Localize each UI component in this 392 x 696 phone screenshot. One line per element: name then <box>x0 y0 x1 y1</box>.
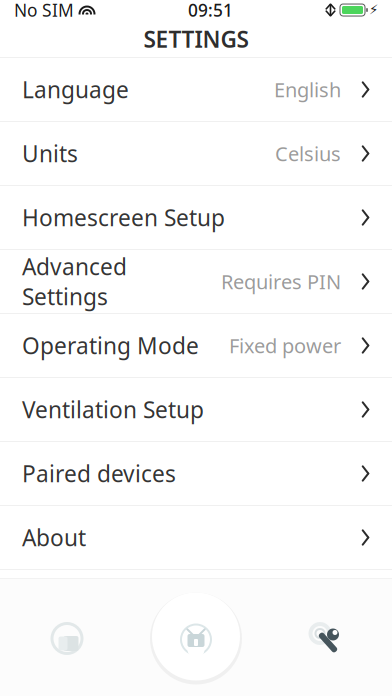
staticText: Ventilation Setup <box>22 394 204 424</box>
staticText: Fixed power <box>229 332 341 359</box>
staticText: Advanced Settings <box>22 251 127 312</box>
button[interactable]: Units <box>0 122 392 186</box>
staticText: About <box>22 522 86 552</box>
button[interactable]: Home <box>141 578 251 696</box>
button[interactable]: Paired devices <box>0 442 392 506</box>
staticText: 09:51 <box>188 0 233 21</box>
staticText: Language <box>22 74 129 104</box>
staticText: No SIM <box>14 0 74 21</box>
button[interactable]: About <box>0 506 392 570</box>
staticText: Units <box>22 138 78 168</box>
staticText: Paired devices <box>22 458 176 488</box>
button[interactable]: Climate <box>12 578 122 696</box>
button[interactable]: Advanced Settings <box>0 250 392 314</box>
staticText: Homescreen Setup <box>22 202 225 232</box>
staticText: Celsius <box>275 140 341 167</box>
button[interactable]: Language <box>0 58 392 122</box>
button[interactable]: Home <box>146 586 246 686</box>
staticText: English <box>274 76 341 103</box>
staticText: SETTINGS <box>143 24 248 54</box>
staticText: Requires PIN <box>221 268 341 295</box>
button[interactable]: Ventilation Setup <box>0 378 392 442</box>
button[interactable]: Operating Mode <box>0 314 392 378</box>
button[interactable]: Settings <box>270 578 380 696</box>
staticText: Operating Mode <box>22 330 199 360</box>
button[interactable]: Homescreen Setup <box>0 186 392 250</box>
staticText: ⚡︎ <box>369 2 378 17</box>
